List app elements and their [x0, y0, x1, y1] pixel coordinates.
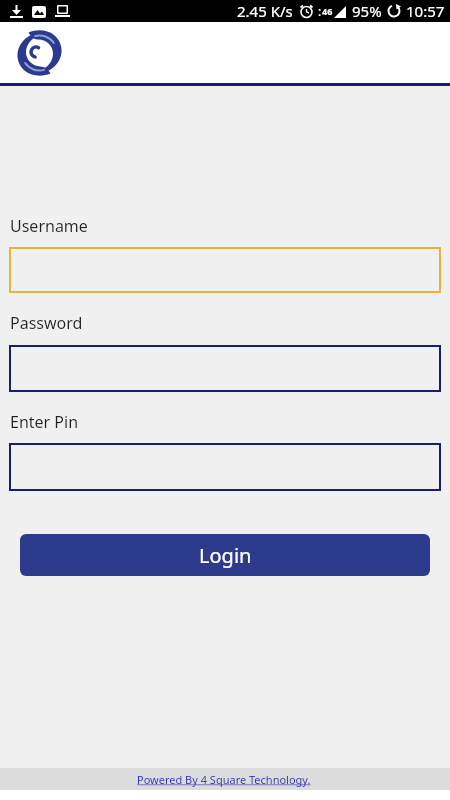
staticText: Username	[10, 215, 88, 237]
button[interactable]: Login	[20, 534, 430, 576]
button[interactable]	[9, 247, 441, 293]
staticText: Powered By 4 Square Technology.	[137, 772, 314, 787]
staticText: 46	[322, 5, 333, 17]
button[interactable]: Powered By 4 Square Technology.	[0, 768, 450, 790]
staticText: 95%	[352, 1, 382, 21]
staticText: Enter Pin	[10, 411, 79, 433]
button[interactable]	[9, 443, 441, 491]
button[interactable]	[9, 345, 441, 392]
staticText: Password	[10, 312, 83, 334]
staticText: :	[318, 3, 322, 19]
staticText: 10:57	[406, 1, 445, 21]
staticText: Login	[199, 542, 252, 569]
staticText: 2.45 K/s	[237, 1, 293, 21]
